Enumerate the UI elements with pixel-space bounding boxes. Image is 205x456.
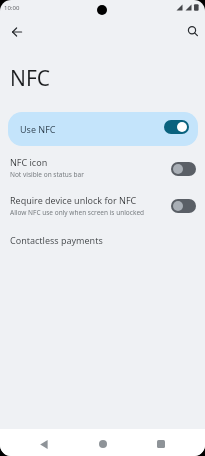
button[interactable]: NFC icon: [0, 152, 205, 182]
button[interactable]: [88, 429, 117, 456]
button[interactable]: [171, 162, 196, 176]
button[interactable]: [182, 20, 203, 41]
staticText: 10:00: [4, 4, 20, 12]
button[interactable]: [171, 199, 196, 213]
staticText: NFC icon: [10, 156, 48, 168]
button[interactable]: [146, 429, 175, 456]
button[interactable]: Use NFC: [8, 112, 198, 146]
button[interactable]: Require device unlock for NFC: [0, 191, 205, 221]
staticText: Allow NFC use only when screen is unlock…: [10, 208, 145, 217]
staticText: Require device unlock for NFC: [10, 194, 137, 206]
staticText: Contactless payments: [10, 234, 103, 246]
button[interactable]: [6, 21, 27, 42]
button[interactable]: [29, 429, 58, 456]
button[interactable]: [164, 120, 189, 134]
staticText: Use NFC: [20, 123, 56, 135]
button[interactable]: Contactless payments: [0, 228, 205, 254]
staticText: Not visible on status bar: [10, 170, 84, 179]
staticText: NFC: [10, 64, 51, 93]
